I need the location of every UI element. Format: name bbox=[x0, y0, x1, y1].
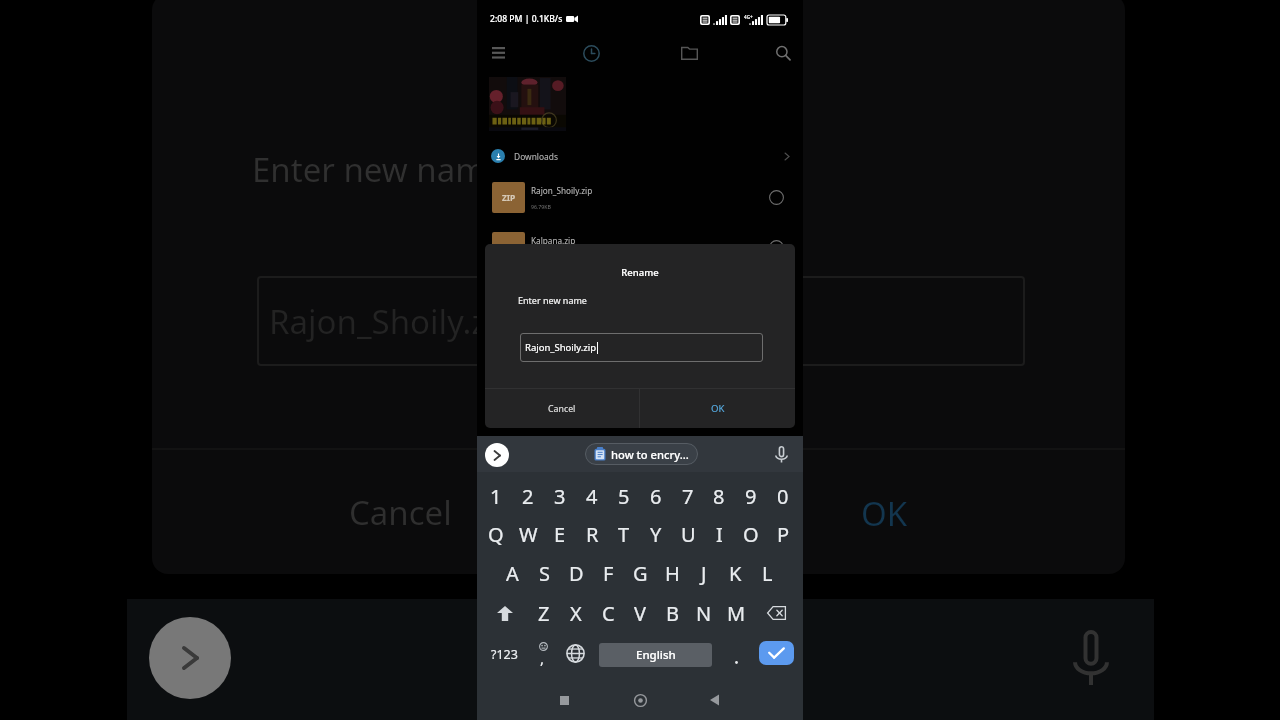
staticText: L bbox=[762, 560, 773, 587]
staticText: G bbox=[633, 560, 648, 587]
staticText: B bbox=[666, 600, 679, 627]
staticText: ZIP bbox=[502, 192, 516, 203]
staticText: O bbox=[743, 521, 759, 548]
button[interactable]: Video thumbnail bbox=[489, 77, 566, 131]
staticText: OK bbox=[861, 491, 908, 536]
staticText: 6 bbox=[650, 483, 662, 510]
staticText: X bbox=[570, 600, 582, 627]
button[interactable]: 2 bbox=[512, 477, 544, 515]
button[interactable]: 7 bbox=[672, 477, 704, 515]
button[interactable]: X bbox=[560, 594, 592, 632]
button[interactable]: Folders bbox=[669, 38, 709, 68]
staticText: K bbox=[729, 560, 742, 587]
button[interactable]: H bbox=[656, 554, 688, 592]
button[interactable]: P bbox=[767, 515, 799, 553]
staticText: N bbox=[696, 600, 712, 627]
button[interactable]: Home bbox=[623, 682, 657, 718]
button[interactable]: Change keyboard language bbox=[560, 634, 590, 674]
button[interactable]: Shift bbox=[487, 594, 523, 632]
staticText: 4 bbox=[586, 483, 598, 510]
button[interactable]: N bbox=[688, 594, 720, 632]
staticText: Rename bbox=[485, 266, 795, 279]
staticText: Q bbox=[488, 521, 504, 548]
button[interactable]: 0 bbox=[767, 477, 799, 515]
button[interactable]: Cancel bbox=[485, 389, 639, 428]
button[interactable]: Search bbox=[763, 38, 803, 68]
button[interactable]: OK bbox=[640, 389, 795, 428]
button[interactable]: M bbox=[720, 594, 752, 632]
staticText: 2 bbox=[522, 483, 534, 510]
button[interactable]: W bbox=[512, 515, 544, 553]
staticText: V bbox=[634, 600, 646, 627]
button[interactable]: 9 bbox=[735, 477, 767, 515]
button[interactable]: A bbox=[496, 554, 528, 592]
staticText: Y bbox=[650, 521, 662, 548]
staticText: C bbox=[602, 600, 615, 627]
staticText: Cancel bbox=[349, 490, 452, 535]
button[interactable]: ZIP bbox=[477, 232, 803, 263]
button[interactable]: Y bbox=[640, 515, 672, 553]
button[interactable]: Menu bbox=[478, 38, 518, 68]
button[interactable]: 4 bbox=[576, 477, 608, 515]
button[interactable]: F bbox=[592, 554, 624, 592]
button[interactable]: U bbox=[672, 515, 704, 553]
staticText: 7 bbox=[682, 483, 694, 510]
staticText: D bbox=[569, 560, 584, 587]
staticText: 0 bbox=[777, 483, 789, 510]
button[interactable]: Expand toolbar bbox=[485, 443, 509, 467]
staticText: Rename bbox=[152, 59, 1125, 105]
staticText: Z bbox=[538, 600, 550, 627]
staticText: 3 bbox=[554, 483, 566, 510]
staticText: I bbox=[716, 521, 723, 548]
button[interactable]: Q bbox=[480, 515, 512, 553]
staticText: M bbox=[727, 600, 746, 627]
button[interactable]: J bbox=[688, 554, 720, 592]
button[interactable]: D bbox=[560, 554, 592, 592]
staticText: Kalpana.zip bbox=[531, 235, 576, 246]
button[interactable]: E bbox=[544, 515, 576, 553]
staticText: 8 bbox=[713, 483, 725, 510]
staticText: , bbox=[540, 648, 545, 668]
button[interactable]: 5 bbox=[608, 477, 640, 515]
staticText: F bbox=[603, 560, 614, 587]
button[interactable]: Z bbox=[528, 594, 560, 632]
button[interactable]: 8 bbox=[703, 477, 735, 515]
button[interactable]: O bbox=[735, 515, 767, 553]
staticText: 4G+ bbox=[744, 14, 753, 20]
staticText: 2:08 PM | 0.1KB/s bbox=[490, 13, 563, 25]
staticText: Rajon_Shoily.zip bbox=[531, 185, 593, 196]
staticText: 96.79KB bbox=[531, 203, 551, 210]
button[interactable]: C bbox=[592, 594, 624, 632]
button[interactable]: Period bbox=[721, 634, 751, 674]
button[interactable]: L bbox=[751, 554, 783, 592]
button[interactable]: G bbox=[624, 554, 656, 592]
button[interactable]: Enter bbox=[759, 641, 794, 665]
staticText: how to encry... bbox=[611, 447, 689, 462]
staticText: H bbox=[665, 560, 680, 587]
button[interactable]: ZIP bbox=[477, 182, 803, 213]
staticText: R bbox=[586, 521, 599, 548]
button[interactable]: V bbox=[624, 594, 656, 632]
button[interactable]: Downloads bbox=[477, 139, 803, 173]
button[interactable]: I bbox=[703, 515, 735, 553]
button[interactable]: K bbox=[719, 554, 751, 592]
staticText: W bbox=[519, 521, 538, 548]
button[interactable]: 3 bbox=[544, 477, 576, 515]
button[interactable]: English bbox=[599, 643, 712, 667]
button[interactable]: S bbox=[528, 554, 560, 592]
staticText: U bbox=[681, 521, 696, 548]
button[interactable]: Recent apps bbox=[547, 682, 581, 718]
button[interactable]: how to encry... bbox=[585, 443, 698, 465]
staticText: Rajon_Shoily.zip bbox=[269, 299, 516, 344]
button[interactable]: B bbox=[656, 594, 688, 632]
button[interactable]: Back bbox=[697, 682, 731, 718]
button[interactable]: T bbox=[608, 515, 640, 553]
button[interactable]: Recent bbox=[571, 38, 611, 68]
button[interactable]: 6 bbox=[640, 477, 672, 515]
button[interactable]: Emoji and comma bbox=[528, 634, 559, 674]
button[interactable]: ?123 bbox=[485, 634, 524, 674]
button[interactable]: R bbox=[576, 515, 608, 553]
button[interactable]: 1 bbox=[480, 477, 512, 515]
button[interactable]: Backspace bbox=[759, 594, 793, 632]
button[interactable]: Voice input bbox=[771, 444, 791, 464]
